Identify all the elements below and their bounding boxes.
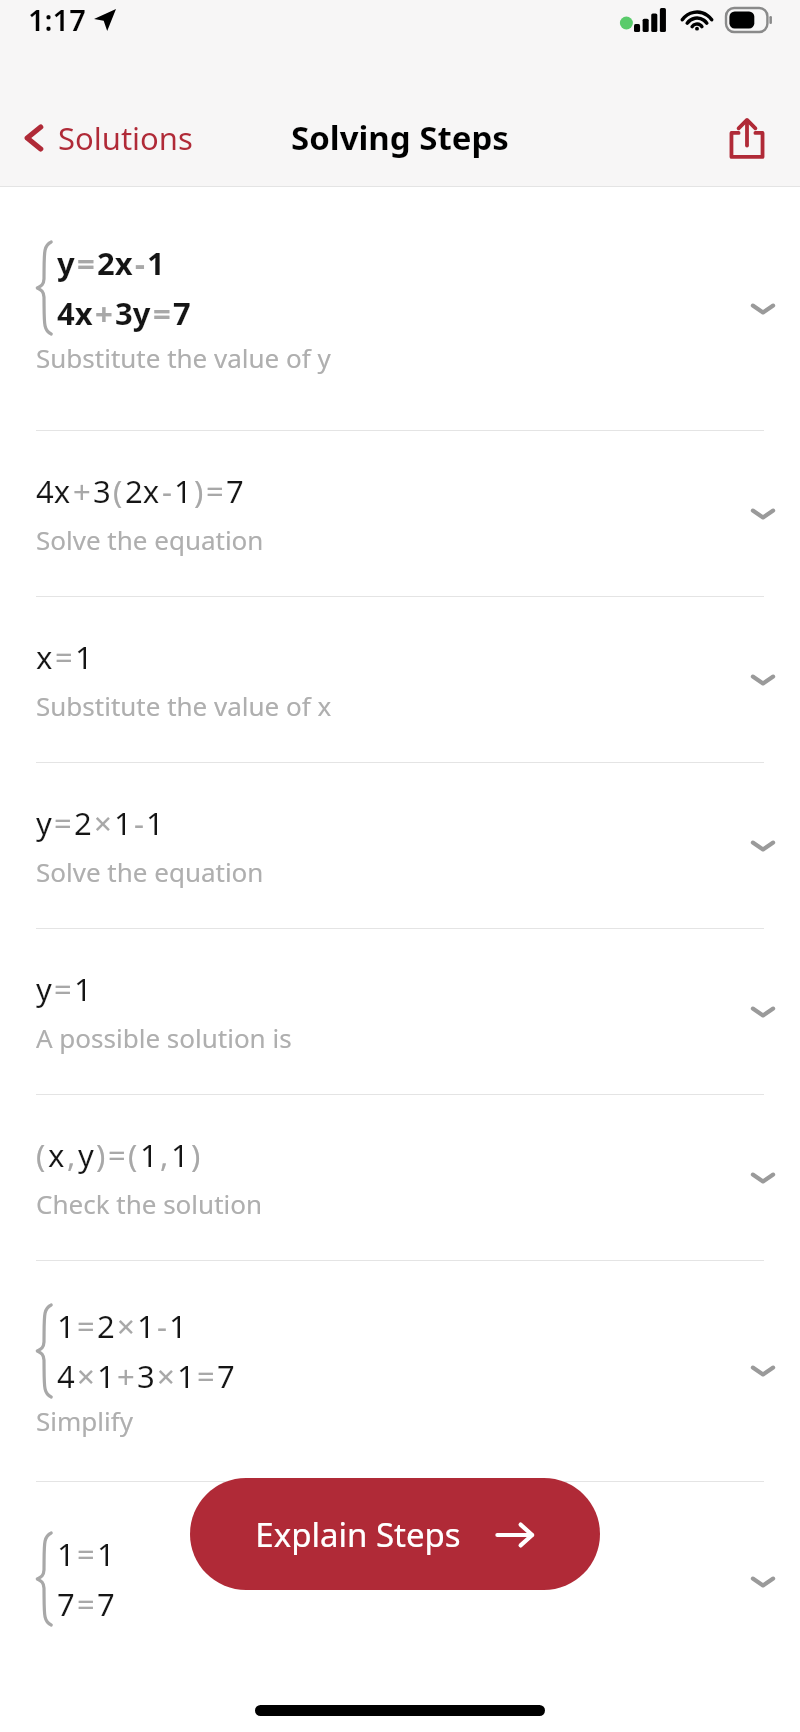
staticText: (: [128, 1134, 138, 1176]
staticText: +: [73, 470, 91, 512]
staticText: 1:17: [28, 0, 86, 39]
staticText: y: [57, 242, 75, 284]
staticText: A possible solution is: [36, 1020, 292, 1055]
staticText: 1: [146, 802, 164, 844]
staticText: 7: [57, 1583, 75, 1625]
staticText: 2x: [97, 242, 133, 284]
staticText: =: [77, 1583, 95, 1625]
staticText: 1: [57, 1533, 75, 1575]
staticText: 1: [57, 1305, 75, 1347]
staticText: y: [36, 802, 52, 844]
staticText: =: [77, 1305, 95, 1347]
staticText: 1: [137, 1305, 155, 1347]
staticText: 1: [74, 968, 92, 1010]
staticText: Solve the equation: [36, 522, 264, 557]
button[interactable]: y: [0, 929, 800, 1094]
button[interactable]: x: [0, 597, 800, 762]
button[interactable]: 1: [0, 1261, 800, 1481]
staticText: 4x: [57, 292, 93, 334]
staticText: (: [36, 1134, 46, 1176]
staticText: 7: [173, 292, 191, 334]
staticText: =: [77, 1533, 95, 1575]
staticText: 4x: [36, 470, 71, 512]
staticText: =: [54, 968, 72, 1010]
button[interactable]: Share: [718, 109, 776, 167]
staticText: 2: [74, 802, 92, 844]
staticText: 1: [169, 1305, 187, 1347]
staticText: Solving Steps: [291, 115, 509, 160]
staticText: ): [194, 470, 204, 512]
button[interactable]: y: [0, 187, 800, 430]
staticText: y: [78, 1134, 94, 1176]
button[interactable]: y: [0, 763, 800, 928]
staticText: +: [117, 1355, 135, 1397]
staticText: 3: [93, 470, 111, 512]
button[interactable]: 4x: [0, 431, 800, 596]
staticText: Explain Steps: [255, 1512, 461, 1557]
staticText: =: [206, 470, 224, 512]
staticText: 1: [174, 470, 192, 512]
staticText: Solve the equation: [36, 854, 264, 889]
staticText: -: [135, 242, 145, 284]
staticText: +: [95, 292, 113, 334]
staticText: =: [197, 1355, 215, 1397]
staticText: 1: [97, 1355, 115, 1397]
staticText: =: [55, 636, 73, 678]
button[interactable]: (: [0, 1095, 800, 1260]
staticText: ): [191, 1134, 201, 1176]
staticText: 3: [137, 1355, 155, 1397]
staticText: 1: [114, 802, 132, 844]
staticText: =: [54, 802, 72, 844]
staticText: 7: [97, 1583, 115, 1625]
staticText: =: [153, 292, 171, 334]
staticText: ,: [67, 1134, 76, 1176]
staticText: 1: [75, 636, 93, 678]
staticText: Check the solution: [36, 1186, 263, 1221]
staticText: (: [113, 470, 123, 512]
staticText: 4: [57, 1355, 75, 1397]
staticText: y: [36, 968, 52, 1010]
staticText: 2x: [125, 470, 160, 512]
staticText: 7: [217, 1355, 235, 1397]
staticText: Solutions: [58, 117, 193, 159]
staticText: x: [48, 1134, 65, 1176]
staticText: ×: [117, 1305, 135, 1347]
staticText: 1: [177, 1355, 195, 1397]
staticText: ,: [160, 1134, 169, 1176]
staticText: ×: [157, 1355, 175, 1397]
staticText: x: [36, 636, 53, 678]
button[interactable]: Solutions: [12, 107, 203, 169]
staticText: 1: [147, 242, 165, 284]
staticText: 7: [226, 470, 244, 512]
staticText: =: [108, 1134, 126, 1176]
button[interactable]: Explain Steps: [190, 1478, 600, 1590]
staticText: 2: [97, 1305, 115, 1347]
staticText: -: [162, 470, 172, 512]
staticText: Substitute the value of y: [36, 340, 331, 375]
button[interactable]: 1: [0, 1482, 800, 1682]
staticText: 1: [97, 1533, 115, 1575]
staticText: =: [77, 242, 95, 284]
staticText: 3y: [115, 292, 151, 334]
staticText: Simplify: [36, 1403, 133, 1438]
staticText: ×: [94, 802, 112, 844]
staticText: Substitute the value of x: [36, 688, 332, 723]
staticText: -: [157, 1305, 167, 1347]
staticText: -: [134, 802, 144, 844]
staticText: ): [96, 1134, 106, 1176]
staticText: 1: [171, 1134, 189, 1176]
staticText: ×: [77, 1355, 95, 1397]
staticText: 1: [140, 1134, 158, 1176]
